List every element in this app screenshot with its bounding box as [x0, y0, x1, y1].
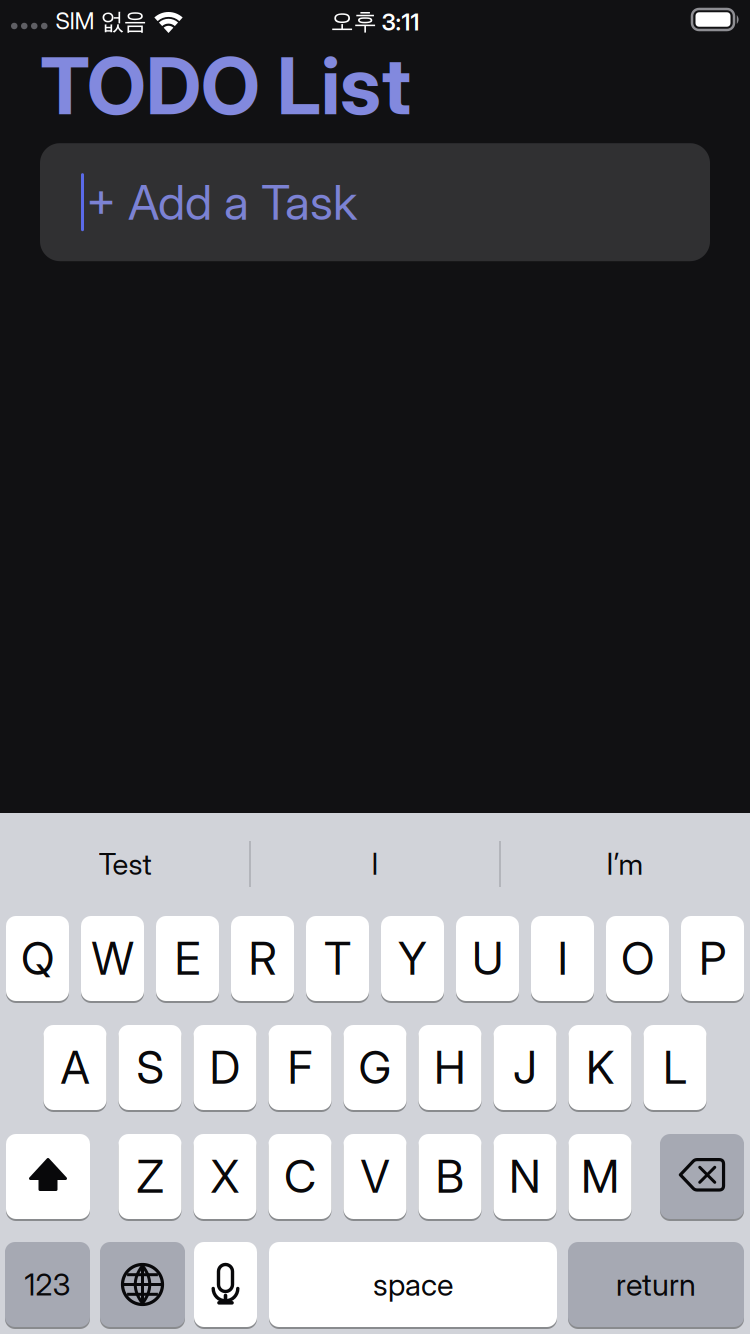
button[interactable]: X — [193, 1134, 256, 1219]
staticText: O — [621, 931, 654, 985]
staticText: U — [472, 931, 503, 985]
staticText: K — [586, 1040, 614, 1094]
button[interactable]: A — [43, 1025, 106, 1110]
button[interactable]: Next keyboard — [100, 1242, 185, 1327]
staticText: T — [324, 931, 351, 985]
button[interactable]: P — [681, 916, 744, 1001]
staticText: return — [616, 1266, 696, 1303]
button[interactable]: E — [156, 916, 219, 1001]
staticText: X — [210, 1149, 239, 1203]
button[interactable]: 123 — [5, 1242, 90, 1327]
button[interactable]: J — [493, 1025, 556, 1110]
staticText: C — [284, 1149, 316, 1203]
staticText: F — [287, 1040, 312, 1094]
button[interactable]: K — [568, 1025, 631, 1110]
button[interactable]: Test — [0, 812, 250, 916]
button[interactable]: return — [568, 1242, 744, 1327]
staticText: TODO List — [40, 38, 411, 133]
staticText: Test — [98, 846, 151, 882]
button[interactable]: M — [568, 1134, 631, 1219]
button[interactable]: V — [343, 1134, 406, 1219]
staticText: I’m — [606, 846, 643, 882]
button[interactable]: Dictate — [194, 1242, 257, 1327]
button[interactable]: F — [268, 1025, 331, 1110]
button[interactable]: space — [269, 1242, 557, 1327]
staticText: 123 — [24, 1266, 70, 1303]
button[interactable]: I — [250, 812, 500, 916]
staticText: Q — [21, 931, 54, 985]
button[interactable]: Shift — [6, 1134, 90, 1219]
staticText: M — [581, 1149, 619, 1203]
staticText: S — [136, 1040, 163, 1094]
staticText: J — [513, 1040, 537, 1094]
button[interactable]: N — [493, 1134, 556, 1219]
button[interactable]: H — [418, 1025, 481, 1110]
button[interactable]: O — [606, 916, 669, 1001]
staticText: Z — [136, 1149, 163, 1203]
button[interactable]: U — [456, 916, 519, 1001]
button[interactable]: G — [343, 1025, 406, 1110]
staticText: E — [174, 931, 200, 985]
button[interactable]: R — [231, 916, 294, 1001]
staticText: N — [509, 1149, 541, 1203]
button[interactable]: T — [306, 916, 369, 1001]
button[interactable]: W — [81, 916, 144, 1001]
staticText: L — [663, 1040, 687, 1094]
button[interactable]: B — [418, 1134, 481, 1219]
button[interactable]: + Add a Task — [40, 143, 710, 261]
staticText: + Add a Task — [86, 173, 357, 231]
staticText: space — [373, 1266, 453, 1303]
staticText: A — [60, 1040, 89, 1094]
staticText: I — [371, 846, 378, 882]
staticText: SIM 없음 — [55, 7, 146, 36]
staticText: H — [434, 1040, 466, 1094]
staticText: P — [699, 931, 726, 985]
button[interactable]: D — [193, 1025, 256, 1110]
button[interactable]: S — [118, 1025, 181, 1110]
staticText: R — [248, 931, 276, 985]
button[interactable]: I — [531, 916, 594, 1001]
button[interactable]: I’m — [500, 812, 750, 916]
staticText: I — [557, 931, 567, 985]
button[interactable]: Z — [118, 1134, 181, 1219]
staticText: V — [360, 1149, 389, 1203]
staticText: G — [358, 1040, 391, 1094]
button[interactable]: Delete — [660, 1134, 744, 1219]
staticText: 오후 3:11 — [330, 7, 419, 36]
button[interactable]: Y — [381, 916, 444, 1001]
staticText: Y — [398, 931, 427, 985]
button[interactable]: C — [268, 1134, 331, 1219]
button[interactable]: Q — [6, 916, 69, 1001]
staticText: B — [435, 1149, 464, 1203]
button[interactable]: L — [643, 1025, 706, 1110]
staticText: W — [91, 931, 133, 985]
staticText: D — [209, 1040, 240, 1094]
